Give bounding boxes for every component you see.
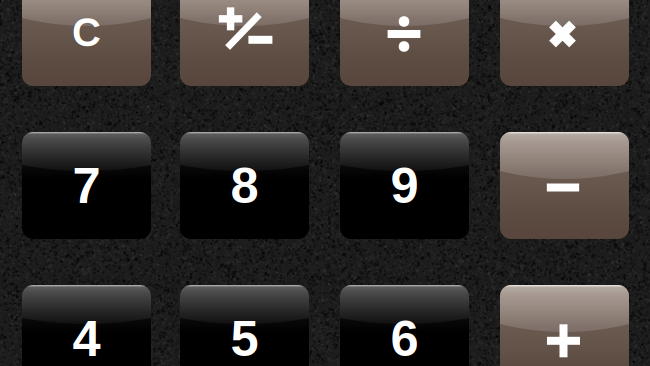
button[interactable]: 6 bbox=[340, 285, 469, 366]
button[interactable]: Minus bbox=[500, 132, 629, 239]
button[interactable]: 7 bbox=[22, 132, 151, 239]
button[interactable]: 9 bbox=[340, 132, 469, 239]
button[interactable]: 5 bbox=[180, 285, 309, 366]
staticText: 5 bbox=[230, 310, 258, 366]
button[interactable]: Clear bbox=[22, 0, 151, 86]
button[interactable]: Divide bbox=[340, 0, 469, 86]
staticText: 8 bbox=[230, 157, 258, 214]
staticText: 6 bbox=[390, 310, 418, 366]
staticText: 4 bbox=[72, 310, 100, 366]
button[interactable]: Plus bbox=[500, 285, 629, 366]
staticText: C bbox=[72, 10, 101, 55]
button[interactable]: Multiply bbox=[500, 0, 629, 86]
button[interactable]: 4 bbox=[22, 285, 151, 366]
button[interactable]: Plus or minus bbox=[180, 0, 309, 86]
staticText: 9 bbox=[390, 157, 418, 214]
staticText: 7 bbox=[72, 157, 100, 214]
button[interactable]: 8 bbox=[180, 132, 309, 239]
